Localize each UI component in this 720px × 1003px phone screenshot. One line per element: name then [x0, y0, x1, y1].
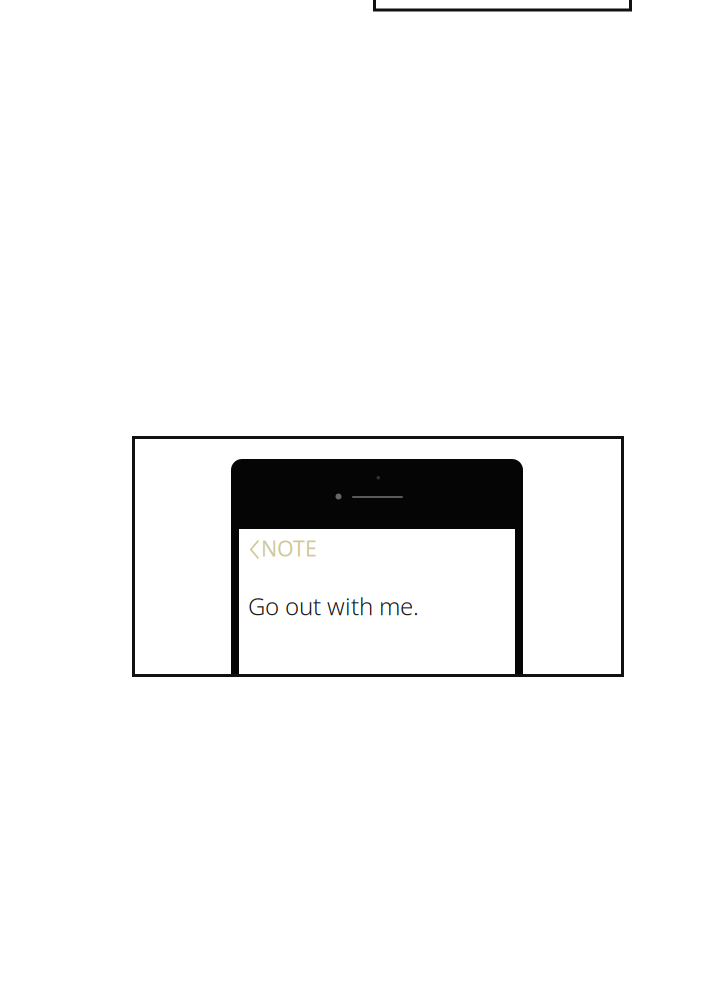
staticText: NOTE — [261, 534, 317, 562]
button[interactable]: NOTE — [247, 533, 343, 565]
staticText: Go out with me. — [248, 590, 419, 622]
